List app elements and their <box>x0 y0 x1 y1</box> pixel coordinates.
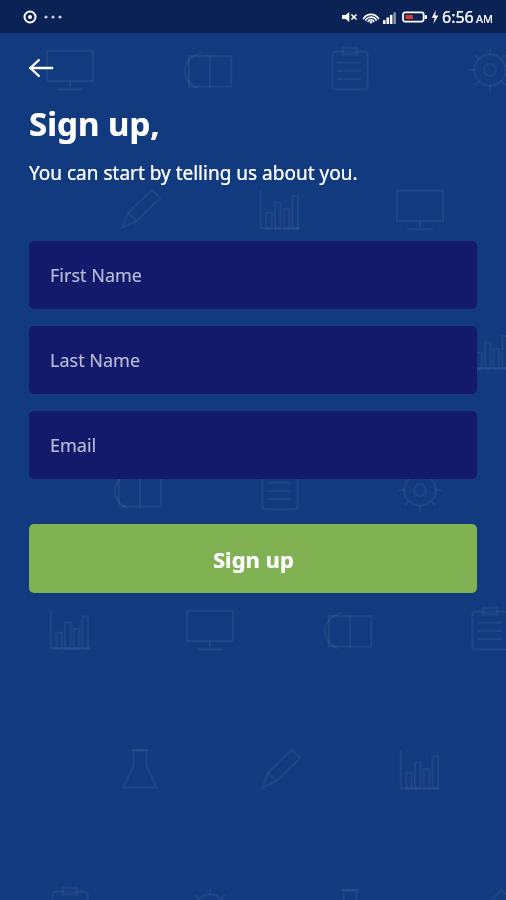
staticText: Last Name <box>50 348 141 373</box>
staticText: AM <box>476 11 494 26</box>
staticText: Sign up <box>213 544 294 574</box>
staticText: First Name <box>50 263 142 288</box>
button[interactable]: Email <box>29 411 477 479</box>
button[interactable]: First Name <box>29 241 477 309</box>
staticText: You can start by telling us about you. <box>29 160 358 186</box>
staticText: Sign up, <box>29 101 160 146</box>
button[interactable]: Last Name <box>29 326 477 394</box>
staticText: 6:56 <box>442 6 474 28</box>
button[interactable]: Back <box>18 45 64 91</box>
staticText: Email <box>50 433 97 458</box>
button[interactable]: Sign up <box>29 524 477 593</box>
